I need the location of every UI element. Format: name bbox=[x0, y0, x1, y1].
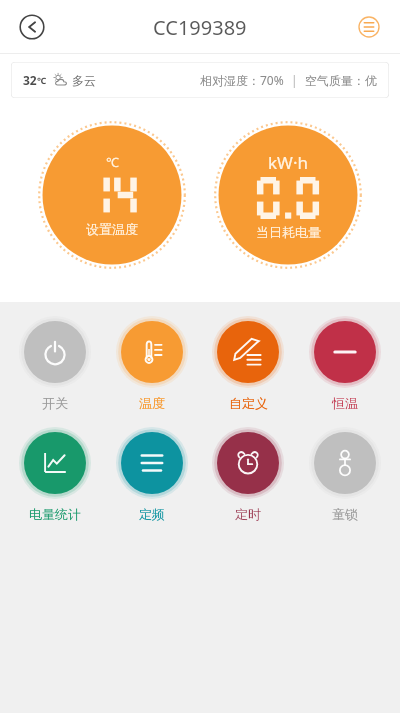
staticText: 多云 bbox=[72, 73, 96, 88]
button[interactable]: 温度 bbox=[111, 316, 193, 411]
staticText: 设置温度 bbox=[86, 221, 138, 237]
staticText: 定频 bbox=[139, 506, 165, 522]
staticText: 自定义 bbox=[229, 395, 268, 411]
staticText: 空气质量：优 bbox=[305, 73, 377, 88]
staticText: 相对湿度：70% bbox=[200, 72, 284, 88]
staticText: ℃ bbox=[106, 153, 119, 171]
button[interactable]: 自定义 bbox=[207, 316, 289, 411]
button[interactable]: Back bbox=[12, 7, 52, 47]
button[interactable]: 恒温 bbox=[304, 316, 386, 411]
staticText: 温度 bbox=[139, 395, 165, 411]
staticText: | bbox=[291, 72, 298, 88]
button[interactable]: Menu bbox=[350, 8, 388, 46]
button[interactable]: 童锁 bbox=[304, 427, 386, 522]
staticText: kW·h bbox=[268, 151, 308, 174]
staticText: 开关 bbox=[42, 395, 68, 411]
staticText: 童锁 bbox=[332, 506, 358, 522]
staticText: 32 bbox=[23, 72, 37, 88]
button[interactable]: ℃ bbox=[37, 120, 187, 270]
button[interactable]: 定频 bbox=[111, 427, 193, 522]
staticText: 恒温 bbox=[332, 395, 358, 411]
button[interactable]: kW·h bbox=[213, 120, 363, 270]
button[interactable]: 开关 bbox=[14, 316, 96, 411]
staticText: 电量统计 bbox=[29, 506, 81, 522]
button[interactable]: 定时 bbox=[207, 427, 289, 522]
staticText: CC199389 bbox=[153, 14, 247, 41]
staticText: ℃ bbox=[37, 74, 47, 86]
staticText: 当日耗电量 bbox=[256, 224, 321, 240]
button[interactable]: 电量统计 bbox=[14, 427, 96, 522]
staticText: 定时 bbox=[235, 506, 261, 522]
